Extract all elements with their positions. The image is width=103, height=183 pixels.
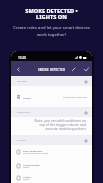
staticText: SMOKE DETECTED • LIGHTS ON xyxy=(25,7,78,21)
button[interactable]: Add CONDITIONS xyxy=(81,108,90,117)
staticText: ACTIONS xyxy=(17,139,27,142)
staticText: SMOKE DETECTED xyxy=(38,68,66,72)
staticText: Sounding light xyxy=(23,163,40,166)
staticText: TRIGGERS xyxy=(17,80,28,83)
staticText: Office xyxy=(23,178,30,181)
button[interactable]: Add ACTIONS xyxy=(81,136,90,145)
staticText: Smoke detected in office xyxy=(23,152,49,155)
button[interactable]: Add TRIGGERS xyxy=(81,77,90,86)
button[interactable]: Smoke xyxy=(11,86,92,107)
button[interactable]: Smoke xyxy=(11,173,92,183)
staticText: Office xyxy=(23,166,30,169)
button[interactable]: Save xyxy=(80,63,92,75)
staticText: Smoke/Heat detected xyxy=(63,96,87,99)
staticText: Create rules and let your smart devices … xyxy=(13,25,90,37)
staticText: Push notification xyxy=(23,149,43,152)
staticText: CONDITIONS xyxy=(17,111,31,114)
staticText: Note: you can add conditions on top of t… xyxy=(17,118,86,131)
staticText: Smoke xyxy=(23,175,31,178)
button[interactable]: Back xyxy=(12,63,24,75)
staticText: 10:20 xyxy=(18,56,27,60)
button[interactable]: Push notification xyxy=(11,145,92,159)
staticText: Smoke xyxy=(23,96,63,99)
button[interactable]: Sounding light xyxy=(11,159,92,173)
button[interactable]: Edit xyxy=(68,63,80,75)
